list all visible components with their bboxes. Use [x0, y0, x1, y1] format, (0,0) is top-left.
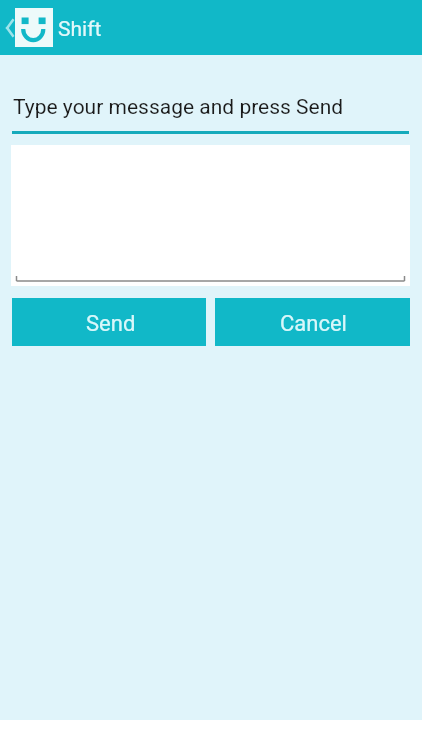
button[interactable]: Send: [12, 298, 206, 346]
button[interactable]: Cancel: [215, 298, 410, 346]
staticText: Send: [86, 311, 136, 337]
staticText: Shift: [58, 17, 102, 42]
button[interactable]: Navigate up: [0, 0, 15, 55]
button[interactable]: [11, 145, 410, 286]
staticText: Type your message and press Send: [13, 95, 344, 120]
staticText: Cancel: [280, 311, 347, 337]
